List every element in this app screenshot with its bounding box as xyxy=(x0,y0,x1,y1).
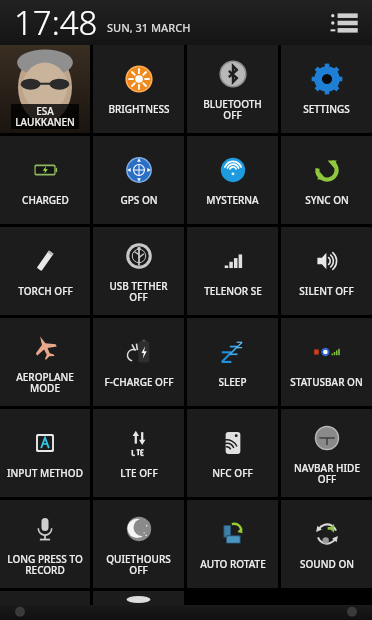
button[interactable]: AEROPLANE MODE xyxy=(0,318,90,406)
button[interactable]: ESA LAUKKANEN xyxy=(0,45,90,133)
button[interactable]: STATUSBAR ON xyxy=(281,318,372,406)
staticText: TELENOR SE xyxy=(204,284,262,298)
staticText: NAVBAR HIDE OFF xyxy=(294,461,360,486)
staticText: AUTO ROTATE xyxy=(200,557,266,571)
staticText: AEROPLANE MODE xyxy=(16,370,74,395)
staticText: SOUND ON xyxy=(300,557,354,571)
staticText: USB TETHER OFF xyxy=(109,279,168,304)
staticText: BLUETOOTH OFF xyxy=(203,97,262,122)
staticText: CHARGED xyxy=(22,193,69,207)
button[interactable]: F-CHARGE OFF xyxy=(93,318,184,406)
button[interactable]: CHARGED xyxy=(0,136,90,224)
staticText: 17:48 xyxy=(14,0,98,45)
staticText: SILENT OFF xyxy=(299,284,354,298)
staticText: SETTINGS xyxy=(303,102,350,116)
button[interactable]: LTE OFF xyxy=(93,409,184,497)
button[interactable]: LONG PRESS TO RECORD xyxy=(0,500,90,588)
staticText: QUIETHOURS OFF xyxy=(106,552,171,577)
button[interactable]: MYSTERNA xyxy=(187,136,278,224)
button[interactable]: SLEEP xyxy=(187,318,278,406)
staticText: INPUT METHOD xyxy=(7,466,83,480)
staticText: LTE OFF xyxy=(120,466,158,480)
button[interactable] xyxy=(93,591,184,605)
staticText: NFC OFF xyxy=(212,466,253,480)
button[interactable]: TORCH OFF xyxy=(0,227,90,315)
button[interactable]: NAVBAR HIDE OFF xyxy=(281,409,372,497)
button[interactable]: TELENOR SE xyxy=(187,227,278,315)
staticText: ESA LAUKKANEN xyxy=(15,104,75,129)
button[interactable]: INPUT METHOD xyxy=(0,409,90,497)
staticText: MYSTERNA xyxy=(206,193,259,207)
button[interactable]: SYNC ON xyxy=(281,136,372,224)
button[interactable]: Settings list xyxy=(326,5,362,41)
button[interactable]: QUIETHOURS OFF xyxy=(93,500,184,588)
staticText: SUN, 31 MARCH xyxy=(107,20,191,35)
button[interactable]: GPS ON xyxy=(93,136,184,224)
button[interactable]: BRIGHTNESS xyxy=(93,45,184,133)
button[interactable]: AUTO ROTATE xyxy=(187,500,278,588)
button[interactable]: SETTINGS xyxy=(281,45,372,133)
staticText: F-CHARGE OFF xyxy=(104,375,174,389)
staticText: SLEEP xyxy=(218,375,247,389)
staticText: GPS ON xyxy=(120,193,158,207)
button[interactable]: USB TETHER OFF xyxy=(93,227,184,315)
staticText: SYNC ON xyxy=(305,193,349,207)
staticText: STATUSBAR ON xyxy=(290,375,363,389)
staticText: BRIGHTNESS xyxy=(108,102,170,116)
button[interactable]: NFC OFF xyxy=(187,409,278,497)
staticText: LONG PRESS TO RECORD xyxy=(7,552,83,577)
staticText: TORCH OFF xyxy=(18,284,73,298)
button[interactable]: SOUND ON xyxy=(281,500,372,588)
button[interactable]: SILENT OFF xyxy=(281,227,372,315)
button[interactable]: BLUETOOTH OFF xyxy=(187,45,278,133)
